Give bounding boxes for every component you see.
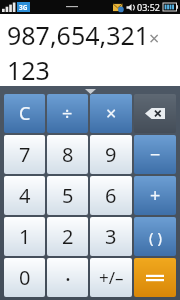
button[interactable]: + bbox=[134, 176, 176, 215]
button[interactable]: ( ) bbox=[134, 217, 176, 256]
staticText: 0 bbox=[19, 264, 31, 291]
button[interactable]: 5 bbox=[47, 176, 88, 215]
staticText: 4 bbox=[19, 182, 31, 209]
staticText: 7 bbox=[19, 141, 31, 168]
staticText: 3G bbox=[19, 3, 28, 12]
button[interactable]: 9 bbox=[90, 135, 132, 174]
button[interactable]: 0 bbox=[4, 258, 45, 297]
staticText: C bbox=[19, 101, 31, 126]
button[interactable]: Equals bbox=[134, 258, 176, 297]
button[interactable]: 2 bbox=[47, 217, 88, 256]
staticText: 987,654,321× bbox=[7, 18, 160, 52]
button[interactable]: 1 bbox=[4, 217, 45, 256]
button[interactable]: 6 bbox=[90, 176, 132, 215]
button[interactable]: +/– bbox=[90, 258, 132, 297]
button[interactable]: − bbox=[134, 135, 176, 174]
staticText: 2 bbox=[62, 223, 74, 250]
staticText: 8 bbox=[62, 141, 74, 168]
staticText: ÷ bbox=[62, 101, 73, 126]
button[interactable]: · bbox=[47, 258, 88, 297]
button[interactable]: C bbox=[4, 94, 45, 133]
staticText: ( ) bbox=[149, 227, 162, 247]
staticText: 3 bbox=[105, 223, 117, 250]
button[interactable]: Backspace bbox=[134, 94, 176, 133]
button[interactable]: 7 bbox=[4, 135, 45, 174]
staticText: · bbox=[65, 263, 71, 293]
staticText: 9 bbox=[105, 141, 117, 168]
staticText: 1 bbox=[19, 223, 31, 250]
staticText: 03:52 bbox=[137, 1, 161, 13]
staticText: − bbox=[150, 142, 161, 167]
button[interactable]: 3 bbox=[90, 217, 132, 256]
button[interactable]: 4 bbox=[4, 176, 45, 215]
staticText: 5 bbox=[62, 182, 74, 209]
staticText: × bbox=[106, 101, 117, 126]
other: Collapse keypad bbox=[85, 89, 96, 94]
staticText: 6 bbox=[105, 182, 117, 209]
staticText: + bbox=[150, 183, 161, 208]
button[interactable]: × bbox=[90, 94, 132, 133]
staticText: +/– bbox=[99, 266, 124, 289]
button[interactable]: 8 bbox=[47, 135, 88, 174]
staticText: 123 bbox=[7, 53, 50, 86]
button[interactable]: ÷ bbox=[47, 94, 88, 133]
